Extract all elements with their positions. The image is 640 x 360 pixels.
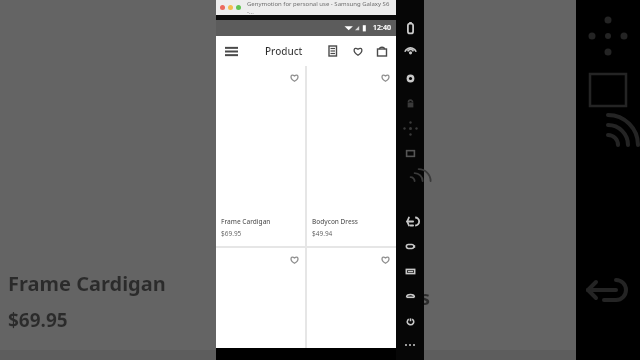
button[interactable]: Battery xyxy=(396,16,424,41)
button[interactable]: Lock xyxy=(396,91,424,116)
button[interactable]: GPS xyxy=(396,41,424,66)
button[interactable]: Favorite xyxy=(307,248,396,348)
button[interactable]: Camera xyxy=(396,66,424,91)
button[interactable]: Menu xyxy=(396,259,424,284)
staticText: $49.94 xyxy=(312,229,333,238)
button[interactable]: Wishlist xyxy=(346,39,370,63)
button[interactable]: Recents xyxy=(396,234,424,259)
button[interactable]: Identifiers xyxy=(396,141,424,166)
button[interactable]: Favorite xyxy=(216,66,305,246)
staticText: Frame Cardigan xyxy=(8,270,166,297)
button[interactable]: Favorite xyxy=(283,66,305,88)
button[interactable]: Back xyxy=(396,209,424,234)
staticText: Bodycon Dress xyxy=(312,217,359,226)
button[interactable]: Menu xyxy=(216,36,246,66)
button[interactable]: Favorite xyxy=(374,248,396,270)
staticText: $69.95 xyxy=(8,307,68,333)
button[interactable]: Favorite xyxy=(374,66,396,88)
button[interactable]: More xyxy=(396,334,424,356)
button[interactable]: Rotate xyxy=(396,116,424,141)
staticText: 12:40 xyxy=(373,23,391,33)
button[interactable]: Favorite xyxy=(216,248,305,348)
button[interactable]: Favorite xyxy=(307,66,396,246)
staticText: Frame Cardigan xyxy=(221,217,271,226)
button[interactable]: Network xyxy=(396,166,424,191)
button[interactable]: Cart xyxy=(370,39,394,63)
staticText: s xyxy=(420,284,431,311)
button[interactable]: Power xyxy=(396,309,424,334)
button[interactable]: Filter xyxy=(322,39,346,63)
button[interactable]: Home xyxy=(396,284,424,309)
staticText: Genymotion for personal use - Samsung Ga… xyxy=(247,0,396,15)
staticText: Product xyxy=(265,44,303,58)
staticText: $69.95 xyxy=(221,229,242,238)
button[interactable]: Favorite xyxy=(283,248,305,270)
